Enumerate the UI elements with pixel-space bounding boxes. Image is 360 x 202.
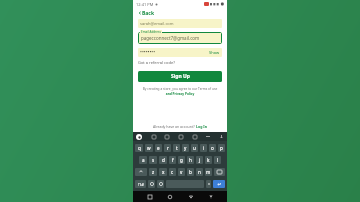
button[interactable]: f (169, 156, 176, 164)
staticText: r (167, 145, 169, 151)
staticText: f (172, 157, 174, 163)
button[interactable]: l (214, 156, 221, 164)
button[interactable]: Shift (135, 168, 147, 176)
button[interactable]: Recents (145, 192, 154, 201)
button[interactable]: d (159, 156, 167, 164)
staticText: w (147, 145, 151, 151)
staticText: g (180, 157, 183, 163)
staticText: x (162, 169, 165, 175)
staticText: l (217, 157, 219, 163)
staticText: c (171, 169, 174, 175)
button[interactable]: p (218, 144, 225, 152)
button[interactable]: Home (165, 192, 174, 201)
button[interactable]: u (191, 144, 198, 152)
button[interactable]: o (209, 144, 216, 152)
button[interactable]: r (164, 144, 171, 152)
staticText: z (152, 169, 155, 175)
staticText: pagecconnect7@gmail.com (141, 35, 200, 41)
staticText: b (189, 169, 192, 175)
staticText: Already have an account? (153, 124, 196, 129)
button[interactable]: Back (186, 192, 195, 201)
staticText: By creating a store, you agree to our Te… (138, 87, 222, 91)
staticText: p (220, 145, 223, 151)
staticText: v (180, 169, 183, 175)
staticText: sarah@email.com (140, 21, 174, 26)
staticText: Show (209, 50, 220, 55)
button[interactable]: Expand (219, 134, 224, 139)
button[interactable]: !1# (135, 180, 146, 188)
button[interactable]: x (159, 168, 167, 176)
button[interactable]: y (182, 144, 189, 152)
button[interactable]: s (149, 156, 157, 164)
staticText: h (189, 157, 192, 163)
staticText: 12:41 PM (136, 2, 154, 7)
button[interactable]: g (178, 156, 185, 164)
button[interactable]: a (139, 156, 147, 164)
button[interactable]: k (205, 156, 212, 164)
button[interactable]: v (178, 168, 185, 176)
button[interactable]: i (200, 144, 207, 152)
button[interactable]: Emoji (157, 180, 164, 188)
button[interactable]: h (187, 156, 194, 164)
staticText: and Privacy Policy (138, 92, 222, 96)
staticText: u (193, 145, 196, 151)
button[interactable]: pagecconnect7@gmail.com (138, 32, 222, 44)
button[interactable]: Enter (213, 180, 225, 188)
button[interactable]: n (196, 168, 203, 176)
button[interactable]: j (196, 156, 203, 164)
staticText: t (176, 145, 178, 151)
button[interactable]: w (145, 144, 153, 152)
button[interactable]: Settings (148, 180, 155, 188)
staticText: Log In (196, 124, 207, 129)
button[interactable]: z (149, 168, 157, 176)
button[interactable]: q (135, 144, 143, 152)
button[interactable]: e (155, 144, 162, 152)
staticText: Back (142, 10, 155, 17)
staticText: m (206, 169, 211, 175)
staticText: e (157, 145, 160, 151)
button[interactable]: Show (209, 50, 220, 55)
button[interactable]: More (205, 134, 210, 139)
staticText: q (138, 145, 141, 151)
staticText: Sign Up (171, 73, 190, 80)
button[interactable]: Tool 0 (151, 134, 156, 139)
staticText: j (199, 157, 201, 163)
staticText: !1# (138, 182, 144, 187)
staticText: Got a referral code? (138, 60, 175, 65)
button[interactable]: Filter (206, 192, 215, 201)
button[interactable]: Already have an account? (138, 124, 222, 129)
button[interactable]: Keyboard settings (136, 134, 142, 140)
button[interactable]: Got a referral code? (138, 60, 175, 65)
staticText: d (162, 157, 165, 163)
staticText: k (207, 157, 210, 163)
button[interactable]: Tool 3 (192, 134, 197, 139)
staticText: y (184, 145, 187, 151)
button[interactable]: Backspace (214, 168, 225, 176)
other: Back (138, 11, 142, 15)
button[interactable]: Tool 1 (164, 134, 169, 139)
button[interactable]: b (187, 168, 194, 176)
button[interactable]: Tool 2 (178, 134, 183, 139)
button[interactable]: t (173, 144, 180, 152)
staticText: a (142, 157, 145, 163)
button[interactable]: •••••••• (138, 48, 222, 57)
button[interactable]: c (169, 168, 176, 176)
button[interactable]: Back (138, 8, 222, 18)
staticText: •••••••• (140, 49, 156, 56)
button[interactable]: m (205, 168, 212, 176)
staticText: i (203, 145, 205, 151)
button[interactable]: sarah@email.com (138, 19, 222, 28)
staticText: n (198, 169, 201, 175)
staticText: o (211, 145, 214, 151)
staticText: s (152, 157, 155, 163)
button[interactable]: Period (206, 180, 211, 188)
staticText: Email Address (141, 30, 161, 34)
button[interactable]: Sign Up (138, 71, 222, 82)
